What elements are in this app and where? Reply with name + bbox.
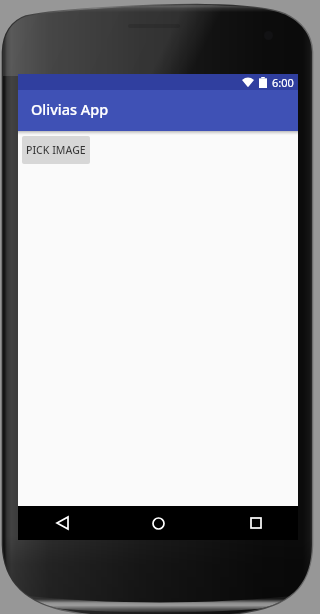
button[interactable]: Recent apps [235,506,276,540]
staticText: Olivias App [31,99,109,119]
staticText: PICK IMAGE [26,143,86,157]
button[interactable]: PICK IMAGE [22,136,90,164]
button[interactable]: Home [138,506,179,540]
staticText: 6:00 [272,75,294,90]
button[interactable]: Back [42,506,83,540]
